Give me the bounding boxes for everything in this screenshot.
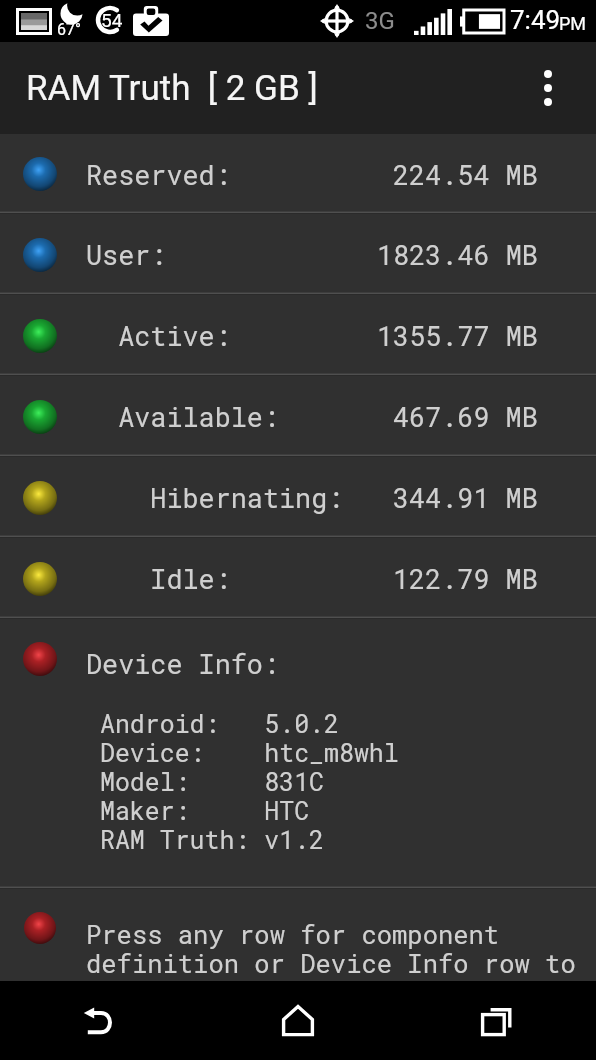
staticText: Active: [86, 318, 231, 353]
button[interactable]: Idle: [0, 538, 596, 619]
staticText: 54 [101, 9, 123, 31]
staticText: 467.69 MB [393, 399, 538, 434]
staticText: Android: 5.0.2 Device: htc_m8whl Model: … [100, 707, 399, 855]
button[interactable]: Hibernating: [0, 457, 596, 538]
staticText: Idle: [86, 561, 231, 596]
staticText: Hibernating: [86, 480, 344, 515]
staticText: Available: [86, 399, 279, 434]
button[interactable]: Device Info: [0, 619, 596, 889]
staticText: 344.91 MB [393, 480, 538, 515]
staticText: 122.79 MB [393, 561, 538, 596]
button[interactable]: Home [198, 981, 397, 1060]
staticText: 7:49 [510, 5, 561, 35]
staticText: RAM Truth [ 2 GB ] [26, 68, 318, 109]
staticText: 3G [365, 7, 395, 35]
button[interactable]: Press any row for component definition o… [0, 889, 596, 981]
button[interactable]: Back [0, 981, 198, 1060]
staticText: 1823.46 MB [377, 237, 538, 272]
button[interactable]: More options [516, 56, 580, 120]
staticText: Press any row for component definition o… [86, 917, 576, 980]
staticText: PM [559, 13, 587, 34]
button[interactable]: Reserved: [0, 134, 596, 214]
button[interactable]: Active: [0, 295, 596, 376]
staticText: 224.54 MB [393, 157, 538, 192]
staticText: 67° [57, 20, 81, 39]
staticText: Reserved: [86, 157, 231, 192]
staticText: Device Info: [86, 646, 279, 681]
button[interactable]: Available: [0, 376, 596, 457]
button[interactable]: User: [0, 214, 596, 295]
staticText: User: [86, 237, 167, 272]
button[interactable]: Recent apps [397, 981, 596, 1060]
staticText: 1355.77 MB [377, 318, 538, 353]
